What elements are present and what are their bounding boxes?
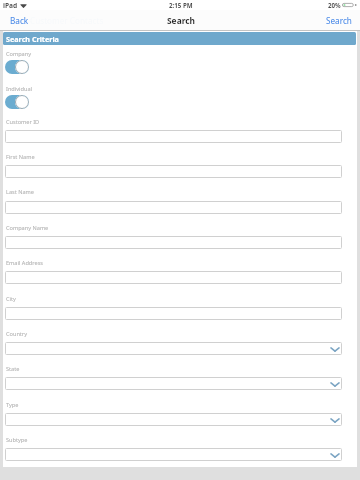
staticText: 20%	[328, 1, 341, 9]
button[interactable]: Country	[5, 342, 342, 355]
button[interactable]: Customer ID	[5, 130, 342, 143]
staticText: Company	[6, 50, 32, 58]
button[interactable]: Company Name	[5, 236, 342, 249]
button[interactable]: Company	[5, 60, 29, 74]
staticText: Company Name	[6, 224, 49, 232]
staticText: Search Criteria	[6, 34, 59, 44]
staticText: City	[6, 295, 16, 303]
staticText: Back	[10, 15, 29, 26]
staticText: First Name	[6, 153, 35, 161]
staticText: Search	[167, 15, 196, 26]
staticText: Search	[326, 15, 352, 26]
staticText: State	[6, 365, 20, 373]
button[interactable]: Last Name	[5, 201, 342, 214]
staticText: Customer ID	[6, 118, 40, 126]
staticText: Country	[6, 330, 28, 338]
staticText: Individual	[6, 85, 32, 93]
button[interactable]: Type	[5, 413, 342, 426]
staticText: Type	[6, 401, 19, 409]
staticText: iPad	[3, 1, 18, 10]
staticText: Last Name	[6, 188, 34, 196]
button[interactable]: First Name	[5, 165, 342, 178]
staticText: Subtype	[6, 436, 28, 444]
button[interactable]: Back	[10, 15, 29, 26]
button[interactable]: Search	[326, 15, 352, 26]
staticText: 2:15 PM	[169, 1, 193, 9]
button[interactable]: City	[5, 307, 342, 320]
button[interactable]: Individual	[5, 95, 29, 109]
staticText: Email Address	[6, 259, 43, 267]
button[interactable]: Subtype	[5, 448, 342, 461]
button[interactable]: State	[5, 377, 342, 390]
button[interactable]: Email Address	[5, 271, 342, 284]
